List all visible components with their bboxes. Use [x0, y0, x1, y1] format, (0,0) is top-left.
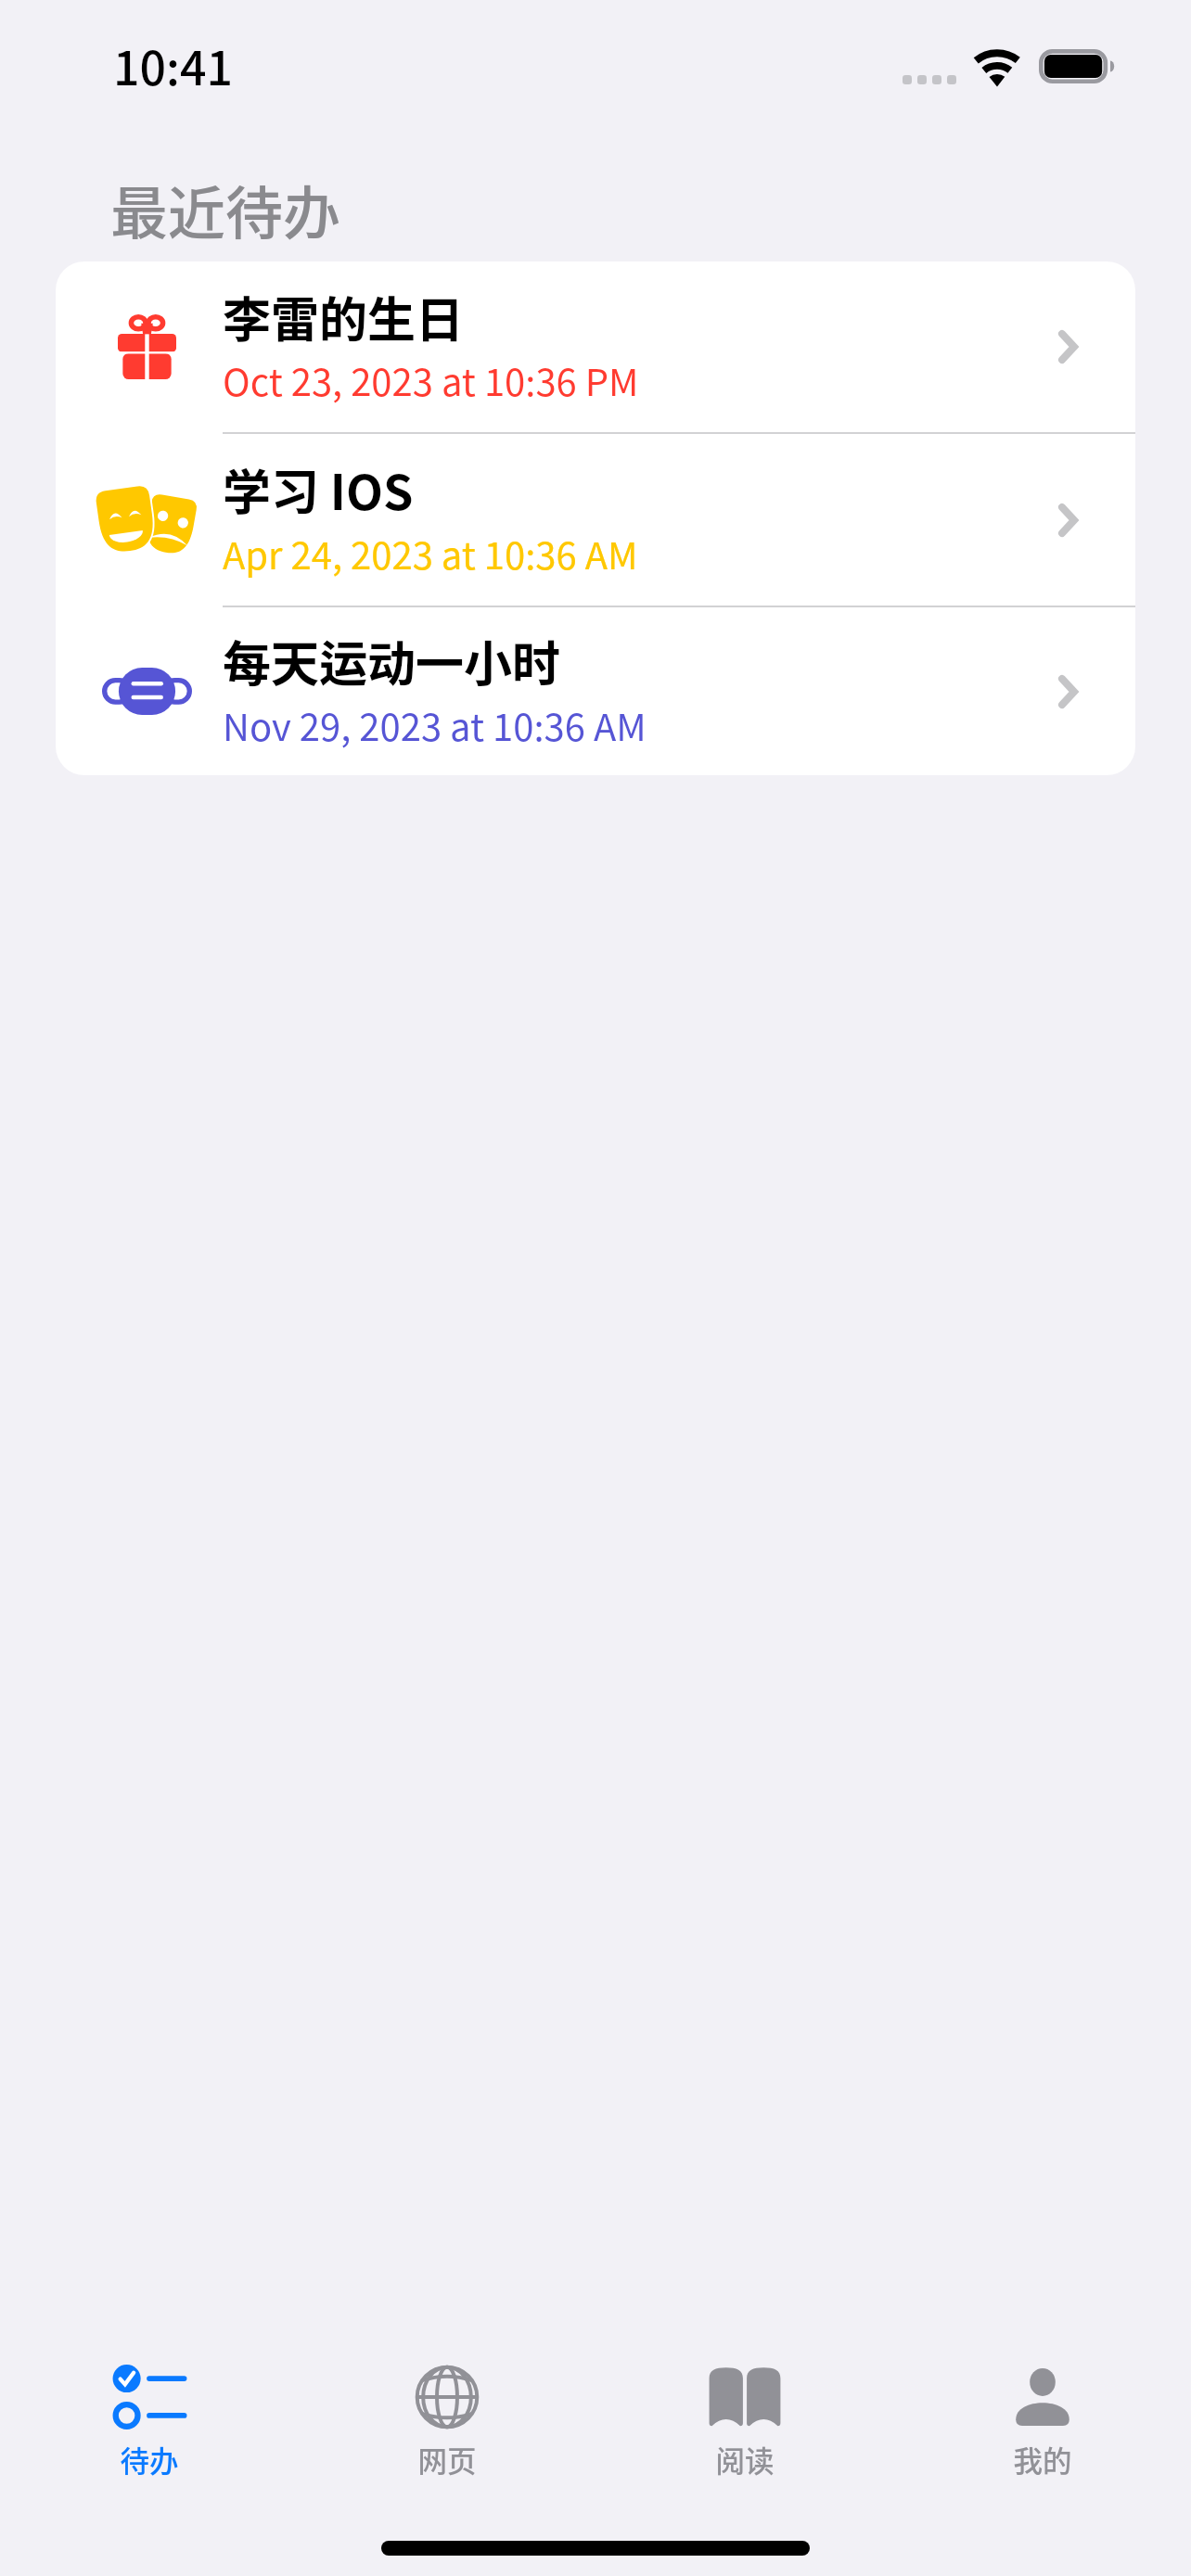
staticText: 学习 IOS — [223, 454, 414, 524]
staticText: 网页 — [417, 2438, 477, 2480]
staticText: 10:41 — [113, 32, 233, 98]
button[interactable]: 学习 IOS — [56, 434, 1135, 606]
staticText: 我的 — [1013, 2438, 1072, 2480]
staticText: 李雷的生日 — [223, 282, 465, 351]
button[interactable]: 待办 — [0, 2318, 298, 2504]
staticText: Nov 29, 2023 at 10:36 AM — [223, 698, 647, 752]
button[interactable]: 我的 — [893, 2318, 1191, 2504]
staticText: 最近待办 — [110, 168, 341, 251]
other: 网页 — [410, 2365, 484, 2429]
staticText: Oct 23, 2023 at 10:36 PM — [223, 353, 639, 407]
button[interactable]: 阅读 — [595, 2318, 893, 2504]
other: 我的 — [1005, 2365, 1080, 2429]
staticText: 每天运动一小时 — [223, 626, 561, 695]
staticText: Apr 24, 2023 at 10:36 AM — [223, 527, 638, 580]
button[interactable]: 李雷的生日 — [56, 261, 1135, 432]
other: 待办 — [112, 2365, 186, 2429]
staticText: 待办 — [120, 2438, 179, 2480]
button[interactable]: 网页 — [298, 2318, 595, 2504]
staticText: 阅读 — [715, 2438, 775, 2480]
button[interactable]: 每天运动一小时 — [56, 607, 1135, 775]
other: 阅读 — [708, 2365, 782, 2429]
